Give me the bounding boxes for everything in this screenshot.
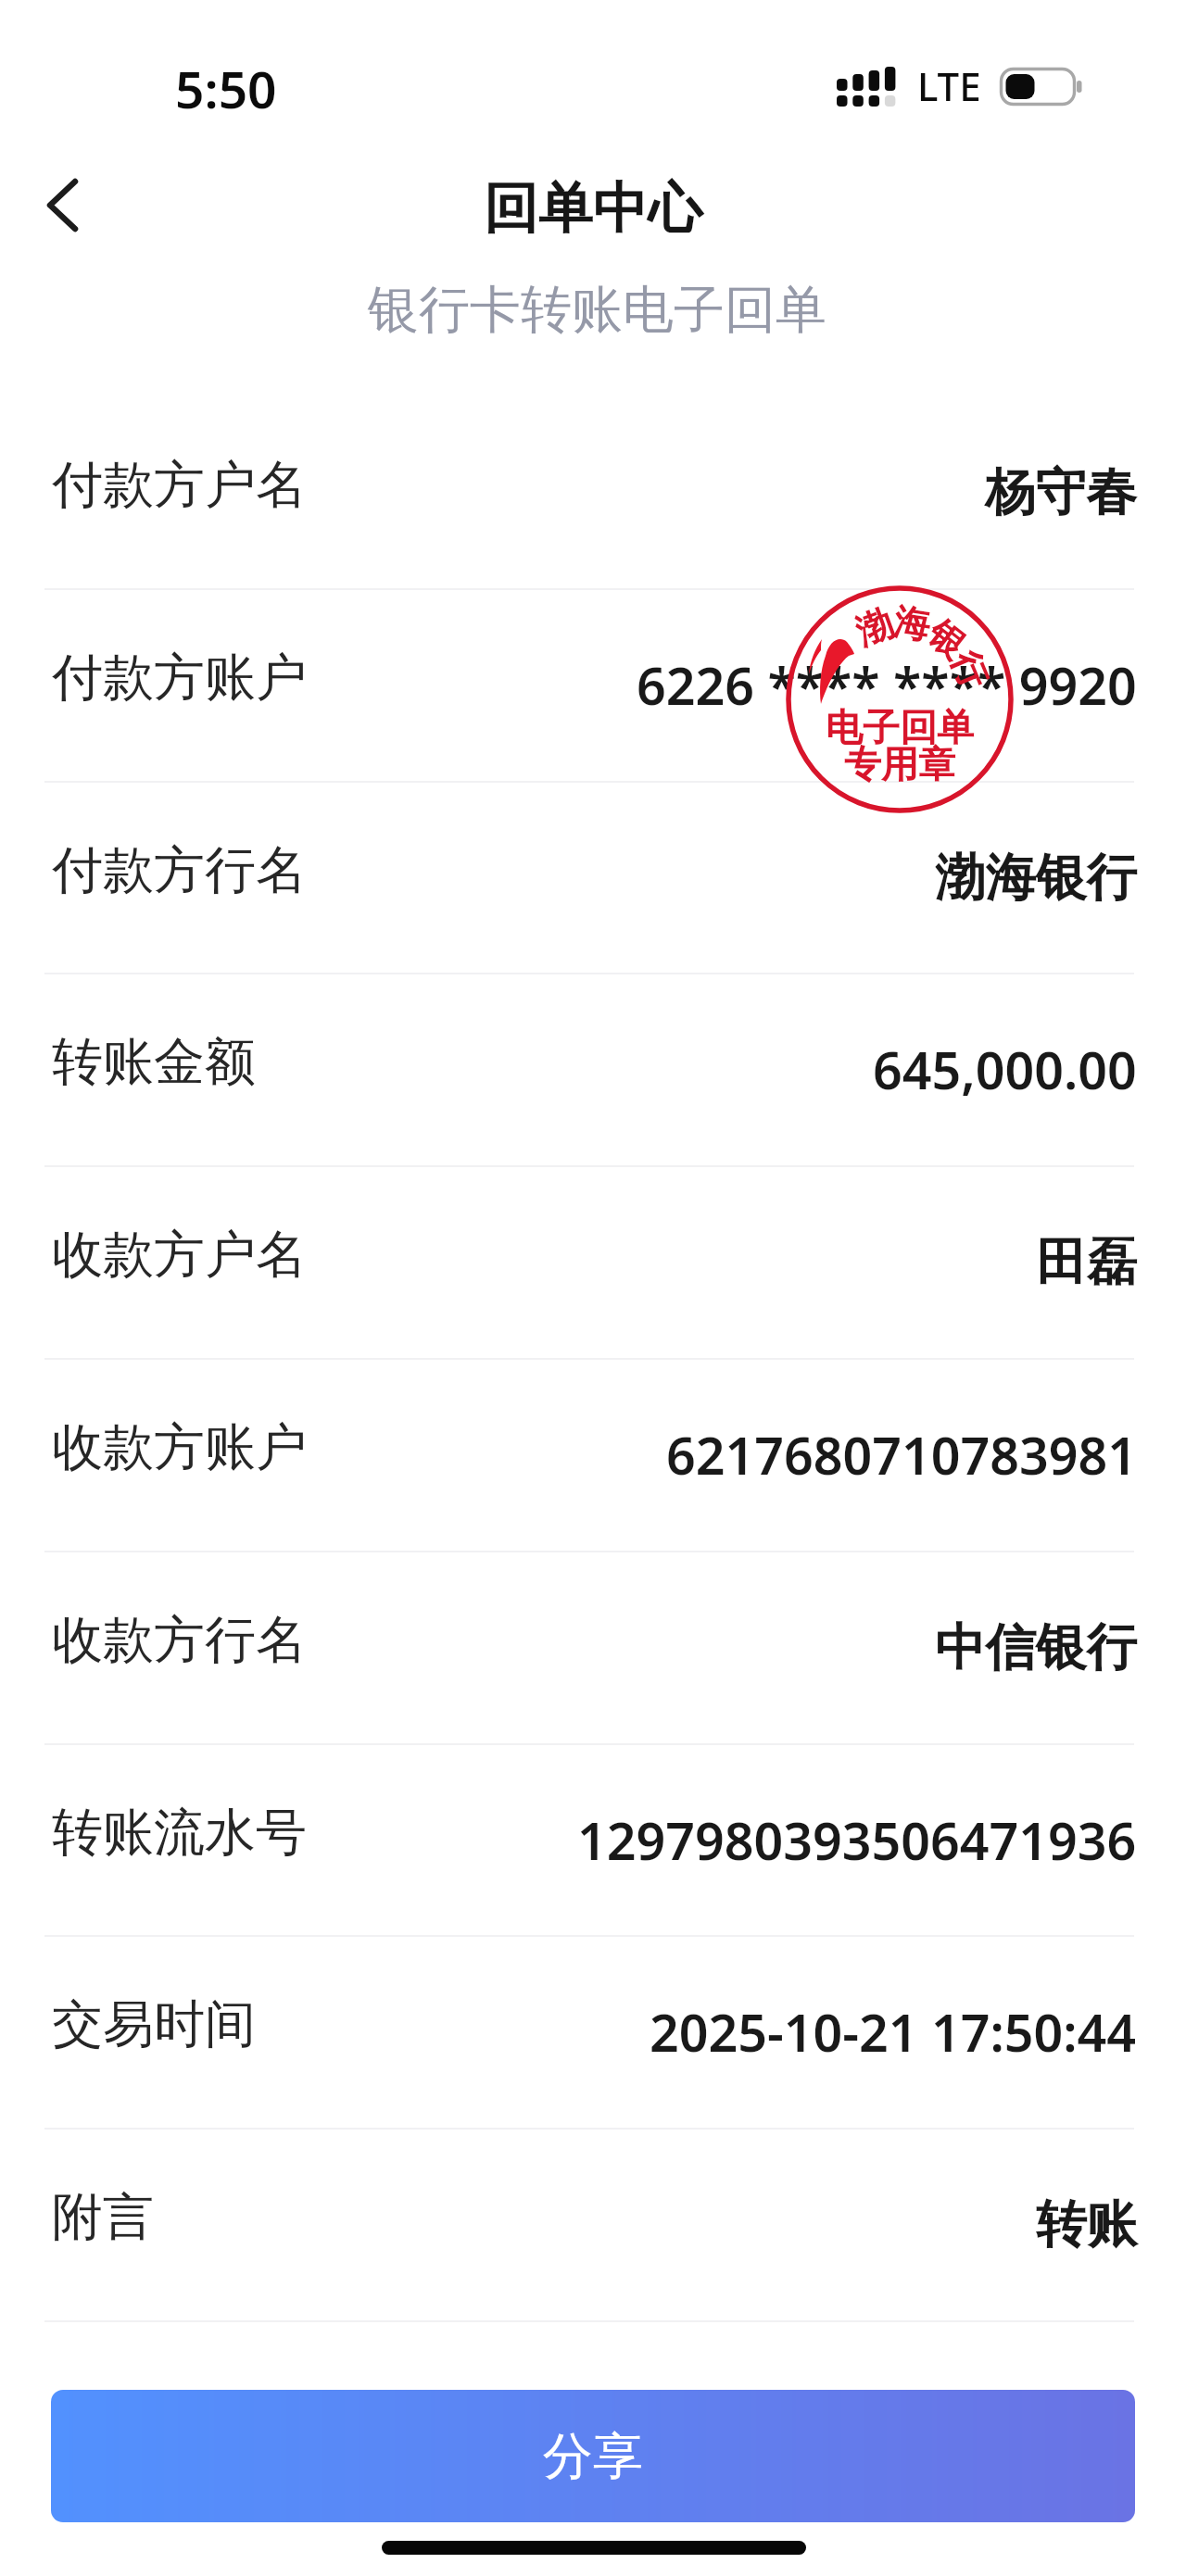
button[interactable]: 转账金额 xyxy=(0,974,1186,1166)
button[interactable]: 转账流水号 xyxy=(0,1744,1186,1937)
staticText: 收款方账户 xyxy=(52,1415,307,1479)
staticText: 杨守春 xyxy=(985,461,1137,525)
staticText: 645,000.00 xyxy=(873,1035,1137,1105)
button[interactable]: 付款方行名 xyxy=(0,782,1186,974)
button[interactable]: 付款方户名 xyxy=(0,396,1186,589)
staticText: 转账 xyxy=(1036,2193,1137,2257)
button[interactable]: 收款方行名 xyxy=(0,1552,1186,1744)
staticText: 行 xyxy=(942,645,998,696)
staticText: 转账流水号 xyxy=(52,1801,307,1865)
staticText: 专用章 xyxy=(844,741,955,787)
staticText: 收款方行名 xyxy=(52,1608,307,1672)
staticText: 海 xyxy=(891,599,934,649)
staticText: 银行卡转账电子回单 xyxy=(368,278,826,342)
button[interactable]: 附言 xyxy=(0,2129,1186,2321)
staticText: 交易时间 xyxy=(52,1992,256,2056)
staticText: 银 xyxy=(919,611,975,669)
staticText: 渤 xyxy=(850,600,899,655)
button[interactable]: 收款方账户 xyxy=(0,1359,1186,1552)
staticText: 6217680710783981 xyxy=(666,1420,1137,1490)
staticText: 付款方账户 xyxy=(52,646,307,710)
staticText: 转账金额 xyxy=(52,1030,256,1094)
staticText: 1297980393506471936 xyxy=(577,1805,1137,1876)
staticText: 付款方户名 xyxy=(52,453,307,517)
staticText: 田磊 xyxy=(1036,1231,1137,1295)
button[interactable]: 付款方账户 xyxy=(0,589,1186,782)
staticText: 6226 **** **** 9920 xyxy=(637,650,1137,721)
button[interactable]: 分享 xyxy=(51,2390,1135,2522)
staticText: 附言 xyxy=(52,2185,154,2249)
staticText: 5:50 xyxy=(175,54,277,123)
staticText: 付款方行名 xyxy=(52,838,307,902)
staticText: 渤海银行 xyxy=(935,847,1137,911)
button[interactable]: 交易时间 xyxy=(0,1936,1186,2129)
staticText: 分享 xyxy=(543,2425,643,2488)
staticText: 收款方户名 xyxy=(52,1223,307,1287)
staticText: 回单中心 xyxy=(484,174,702,243)
staticText: 2025-10-21 17:50:44 xyxy=(650,1997,1137,2067)
staticText: 中信银行 xyxy=(935,1616,1137,1680)
staticText: LTE xyxy=(917,59,981,112)
button[interactable]: Back xyxy=(7,150,118,260)
button[interactable]: 收款方户名 xyxy=(0,1166,1186,1359)
staticText: 电子回单 xyxy=(826,704,974,750)
